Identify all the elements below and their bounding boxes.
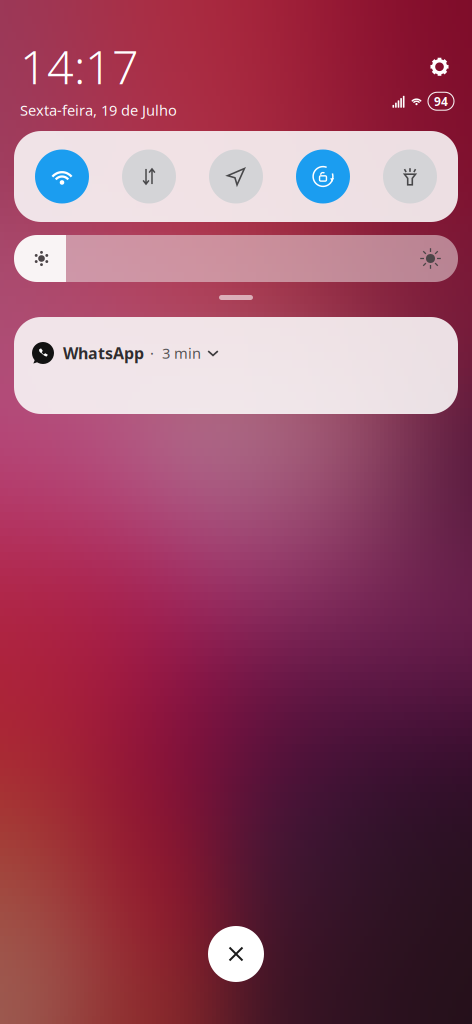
staticText: WhatsApp [63, 342, 144, 364]
button[interactable]: Wi-Fi [35, 149, 89, 203]
button[interactable]: Location [209, 149, 263, 203]
button[interactable]: WhatsApp [0, 317, 472, 414]
button[interactable]: Rotation lock [296, 149, 350, 203]
button[interactable]: Brightness [0, 235, 472, 282]
staticText: · 3 min [150, 343, 201, 363]
button[interactable]: Close notification shade [208, 926, 264, 982]
staticText: Sexta-feira, 19 de Julho [20, 100, 177, 120]
button[interactable]: Settings [425, 52, 454, 81]
staticText: 94 [434, 93, 448, 109]
button[interactable]: Flashlight [383, 149, 437, 203]
staticText: 14:17 [20, 35, 139, 97]
button[interactable]: Mobile data [122, 149, 176, 203]
